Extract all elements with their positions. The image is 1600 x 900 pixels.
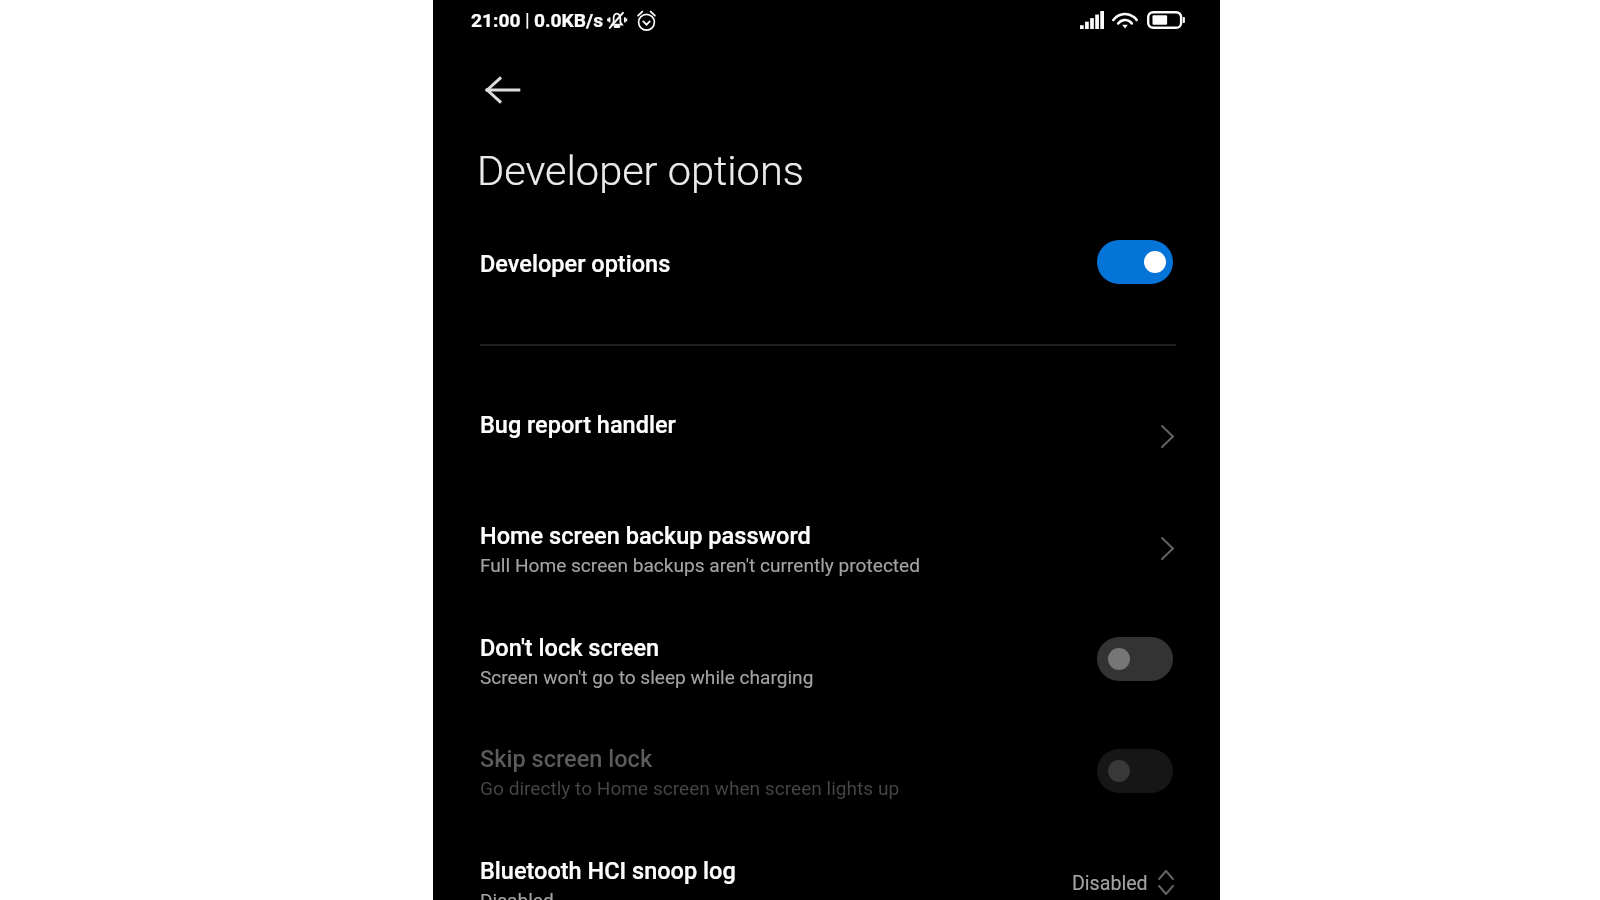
button[interactable]: Don't lock screen toggle	[1097, 637, 1173, 681]
button[interactable]: Developer options toggle	[1097, 240, 1173, 284]
staticText: Bluetooth HCI snoop log	[480, 857, 736, 885]
button[interactable]	[433, 728, 1220, 816]
button[interactable]: Skip screen lock toggle	[1097, 749, 1173, 793]
staticText: Developer options	[480, 250, 671, 278]
staticText: Bug report handler	[480, 411, 676, 439]
button[interactable]: Open	[1141, 526, 1193, 570]
button[interactable]	[433, 504, 1220, 592]
staticText: 21:00	[471, 9, 521, 32]
button[interactable]: Change value	[1144, 860, 1188, 900]
staticText: 0.0KB/s	[534, 9, 604, 32]
button[interactable]	[433, 225, 1220, 299]
staticText: Developer options	[477, 146, 804, 195]
staticText: Full Home screen backups aren't currentl…	[480, 554, 921, 576]
staticText: Home screen backup password	[480, 522, 811, 550]
button[interactable]	[433, 840, 1220, 900]
staticText: Screen won't go to sleep while charging	[480, 666, 814, 688]
button[interactable]	[433, 392, 1220, 480]
staticText: Skip screen lock	[480, 745, 653, 773]
staticText: Go directly to Home screen when screen l…	[480, 777, 900, 799]
staticText: Don't lock screen	[480, 634, 660, 662]
staticText: |	[521, 10, 534, 31]
staticText: Disabled	[1072, 872, 1148, 895]
button[interactable]	[433, 616, 1220, 704]
button[interactable]: Open	[1141, 414, 1193, 458]
button[interactable]: Back	[478, 65, 527, 114]
staticText: Disabled	[480, 889, 554, 900]
